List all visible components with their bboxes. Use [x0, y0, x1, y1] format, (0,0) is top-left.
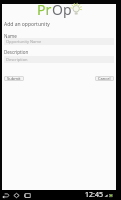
- staticText: Opportunity Name: [6, 39, 42, 44]
- button[interactable]: Opportunity Name: [4, 38, 114, 45]
- staticText: Add an opportunity: [4, 21, 50, 28]
- staticText: 12:45: [85, 190, 103, 200]
- staticText: Name: [4, 33, 17, 39]
- other: Home: [12, 191, 21, 200]
- staticText: Description: [6, 57, 28, 62]
- staticText: Submit: [7, 76, 21, 81]
- staticText: Cancel: [98, 76, 111, 81]
- button[interactable]: Submit: [4, 76, 24, 81]
- staticText: Description: [4, 49, 29, 55]
- button[interactable]: Description: [4, 56, 114, 63]
- other: Recents: [23, 191, 32, 200]
- button[interactable]: Cancel: [95, 76, 114, 81]
- staticText: Pr: [37, 0, 52, 18]
- staticText: Op: [52, 0, 72, 18]
- other: Back: [1, 191, 10, 200]
